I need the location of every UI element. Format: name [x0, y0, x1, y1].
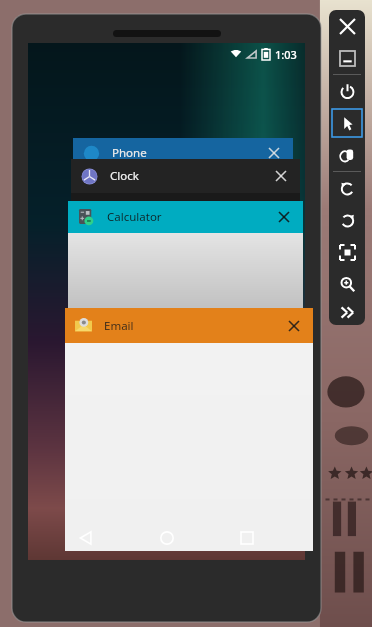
staticText: Calculator: [107, 209, 162, 225]
button[interactable]: Screenshot: [332, 238, 362, 266]
button[interactable]: Rotate right: [332, 206, 362, 234]
button[interactable]: Recent apps: [225, 516, 269, 560]
button[interactable]: Zoom: [332, 270, 362, 298]
button[interactable]: Home: [145, 516, 189, 560]
button[interactable]: Phone: [73, 138, 293, 178]
button[interactable]: Touch: [332, 141, 362, 169]
button[interactable]: Power: [332, 77, 362, 105]
button[interactable]: Close Phone: [265, 144, 283, 162]
staticText: Email: [104, 318, 134, 334]
button[interactable]: Select: [332, 109, 362, 137]
staticText: Phone: [112, 145, 147, 161]
button[interactable]: Close Calculator: [275, 208, 293, 226]
button[interactable]: Clock: [71, 159, 300, 205]
staticText: 1:03: [275, 47, 297, 62]
button[interactable]: Email: [65, 308, 313, 551]
button[interactable]: Close Clock: [272, 167, 290, 185]
staticText: Clock: [110, 168, 139, 184]
button[interactable]: Close Email: [285, 317, 303, 335]
button[interactable]: Calculator: [68, 201, 303, 313]
button[interactable]: Back: [64, 516, 108, 560]
button[interactable]: Close: [332, 12, 362, 40]
button[interactable]: Minimize: [332, 44, 362, 72]
button[interactable]: Rotate left: [332, 174, 362, 202]
button[interactable]: More: [332, 302, 362, 323]
